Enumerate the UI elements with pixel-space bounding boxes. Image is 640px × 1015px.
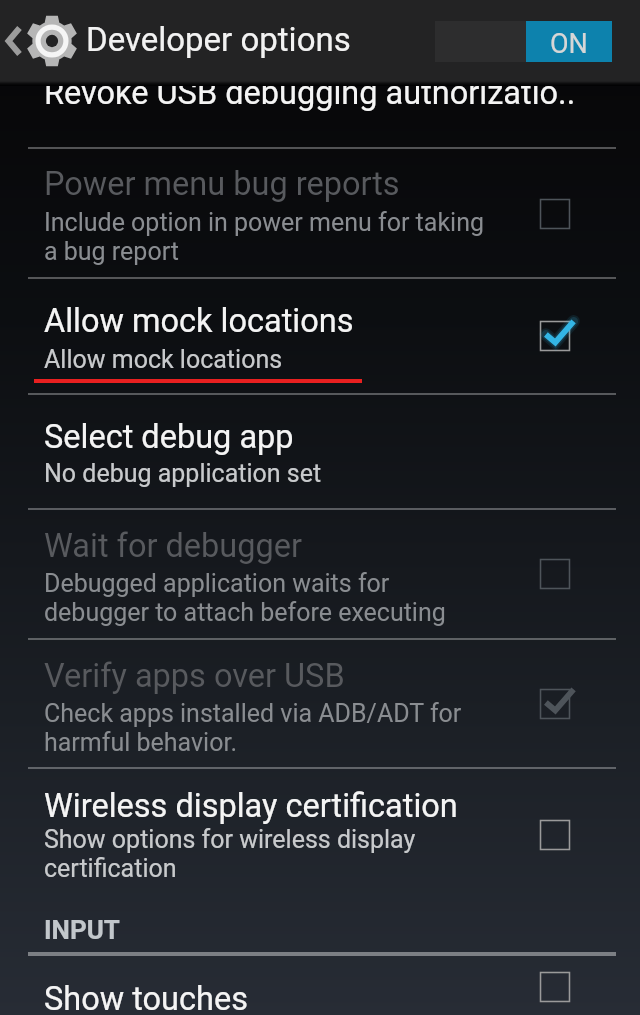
- button[interactable]: [0, 958, 640, 1015]
- staticText: Power menu bug reports: [44, 165, 400, 203]
- button[interactable]: [0, 396, 640, 508]
- staticText: INPUT: [44, 915, 120, 945]
- button[interactable]: [0, 280, 640, 392]
- button[interactable]: [0, 511, 640, 637]
- staticText: Revoke USB debugging authorizatio..: [44, 74, 576, 112]
- staticText: Developer options: [86, 20, 351, 59]
- staticText: Show options for wireless display certif…: [44, 825, 416, 883]
- staticText: Show touches: [44, 980, 248, 1015]
- staticText: Wait for debugger: [44, 527, 302, 565]
- staticText: Verify apps over USB: [44, 657, 345, 695]
- staticText: ON: [550, 28, 588, 60]
- staticText: No debug application set: [44, 459, 322, 488]
- staticText: Debugged application waits for debugger …: [44, 569, 446, 627]
- staticText: Check apps installed via ADB/ADT for har…: [44, 699, 462, 757]
- staticText: Select debug app: [44, 418, 294, 456]
- button[interactable]: [0, 82, 640, 147]
- staticText: Allow mock locations: [44, 345, 283, 374]
- button[interactable]: [0, 641, 640, 767]
- staticText: Include option in power menu for taking …: [44, 208, 484, 266]
- button[interactable]: [0, 150, 640, 277]
- button[interactable]: Developer options on: [435, 21, 612, 62]
- staticText: Allow mock locations: [44, 302, 354, 340]
- staticText: Wireless display certification: [44, 787, 458, 825]
- button[interactable]: [0, 770, 640, 900]
- button[interactable]: Navigate up to settings: [0, 0, 78, 81]
